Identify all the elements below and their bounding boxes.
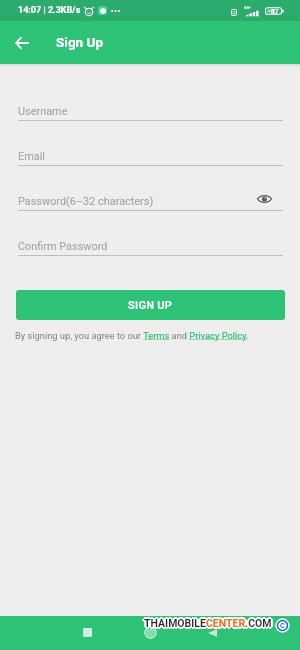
staticText: THAIMOBILECENTER.COM — [143, 618, 271, 630]
button[interactable]: Back — [8, 30, 34, 56]
staticText: THAIMOBILECENTER.COM — [144, 619, 272, 631]
staticText: Confirm Password — [18, 240, 108, 253]
staticText: 14:07 | 2.3KB/s — [18, 5, 81, 16]
staticText: SIGN UP — [128, 299, 173, 312]
staticText: C — [280, 621, 285, 630]
staticText: THAIMOBILECENTER.COM — [142, 617, 270, 629]
staticText: THAIMOBILECENTER.COM — [144, 617, 272, 629]
staticText: Password(6–32 characters) — [18, 195, 154, 208]
staticText: By signing up, you agree to our Terms an… — [15, 330, 249, 341]
staticText: THAIMOBILECENTER.COM — [144, 616, 272, 628]
staticText: Sign Up — [56, 34, 104, 50]
staticText: THAIMOBILECENTER.COM — [144, 615, 272, 627]
staticText: THAIMOBILECENTER.COM — [145, 618, 273, 630]
staticText: THAIMOBILECENTER.COM — [143, 616, 271, 628]
staticText: THAIMOBILECENTER.COM — [143, 617, 271, 629]
staticText: 57 — [271, 8, 279, 16]
button[interactable]: Back — [197, 620, 227, 645]
staticText: THAIMOBILECENTER.COM — [145, 616, 273, 628]
staticText: Username — [18, 105, 68, 118]
button[interactable]: Recents — [72, 620, 103, 645]
staticText: THAIMOBILECENTER.COM — [143, 618, 271, 630]
staticText: THAIMOBILECENTER.COM — [145, 616, 273, 628]
staticText: THAIMOBILECENTER.COM — [145, 618, 273, 630]
staticText: THAIMOBILECENTER.COM — [144, 618, 272, 630]
button[interactable]: SIGN UP — [16, 290, 285, 320]
staticText: THAIMOBILECENTER.COM — [145, 617, 273, 629]
staticText: Email — [18, 150, 45, 163]
staticText: THAIMOBILECENTER.COM — [146, 617, 274, 629]
button[interactable]: Home — [135, 620, 165, 645]
button[interactable]: Show password — [250, 188, 278, 210]
staticText: THAIMOBILECENTER.COM — [143, 616, 271, 628]
